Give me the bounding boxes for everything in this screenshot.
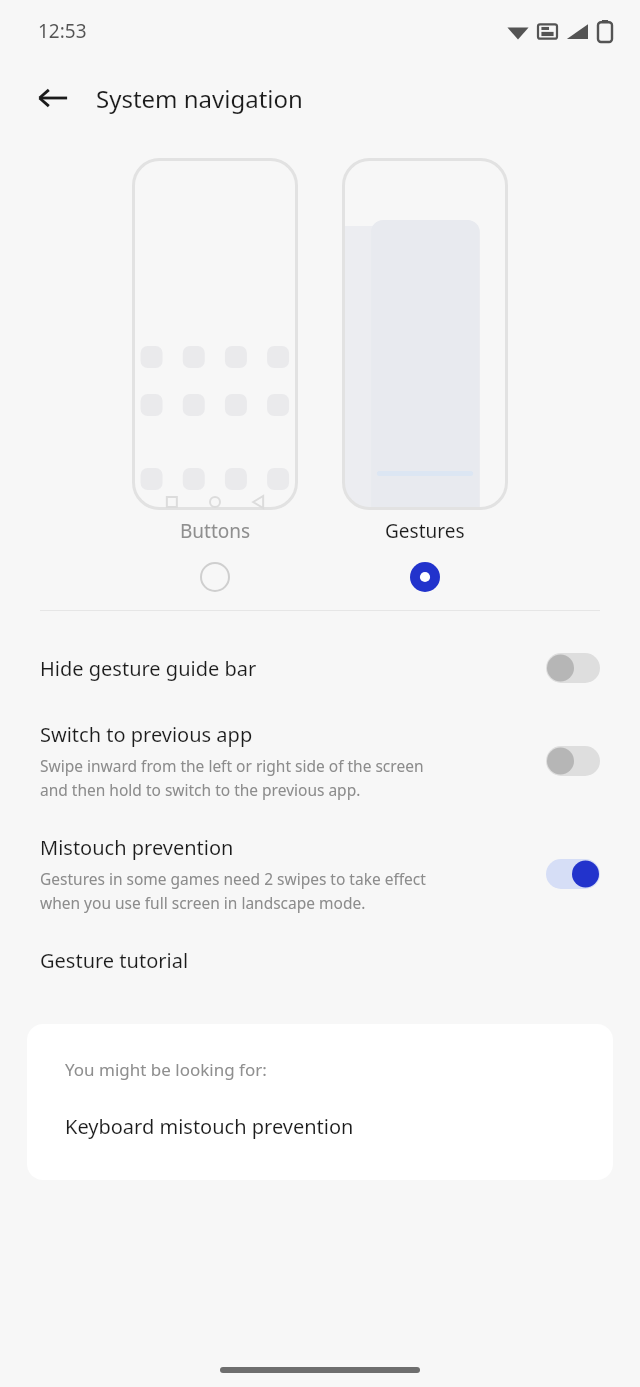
staticText: System navigation (96, 82, 303, 115)
button[interactable]: Keyboard mistouch prevention (65, 1113, 589, 1140)
button[interactable]: Disabled (546, 746, 600, 776)
staticText: You might be looking for: (65, 1058, 267, 1081)
button[interactable]: Back (28, 73, 78, 123)
button[interactable]: Enabled (546, 859, 600, 889)
button[interactable]: Gestures navigation preview (342, 158, 508, 510)
button[interactable]: Gestures (342, 518, 508, 592)
staticText: Buttons (180, 518, 251, 544)
staticText: 12:53 (38, 18, 87, 44)
staticText: Gestures (385, 518, 465, 544)
staticText: Switch to previous app (40, 721, 253, 748)
staticText: Mistouch prevention (40, 834, 234, 861)
button[interactable]: Mistouch prevention (0, 830, 640, 917)
staticText: Keyboard mistouch prevention (65, 1113, 354, 1140)
staticText: Swipe inward from the left or right side… (40, 755, 424, 800)
button[interactable]: Buttons (132, 518, 298, 592)
button[interactable]: Gesture tutorial (0, 941, 640, 980)
staticText: Hide gesture guide bar (40, 655, 257, 682)
button[interactable]: Disabled (546, 653, 600, 683)
button[interactable]: Buttons navigation preview (132, 158, 298, 510)
staticText: Gesture tutorial (40, 947, 189, 974)
staticText: Gestures in some games need 2 swipes to … (40, 868, 426, 913)
button[interactable]: Switch to previous app (0, 717, 640, 804)
button[interactable]: Hide gesture guide bar (0, 649, 640, 687)
